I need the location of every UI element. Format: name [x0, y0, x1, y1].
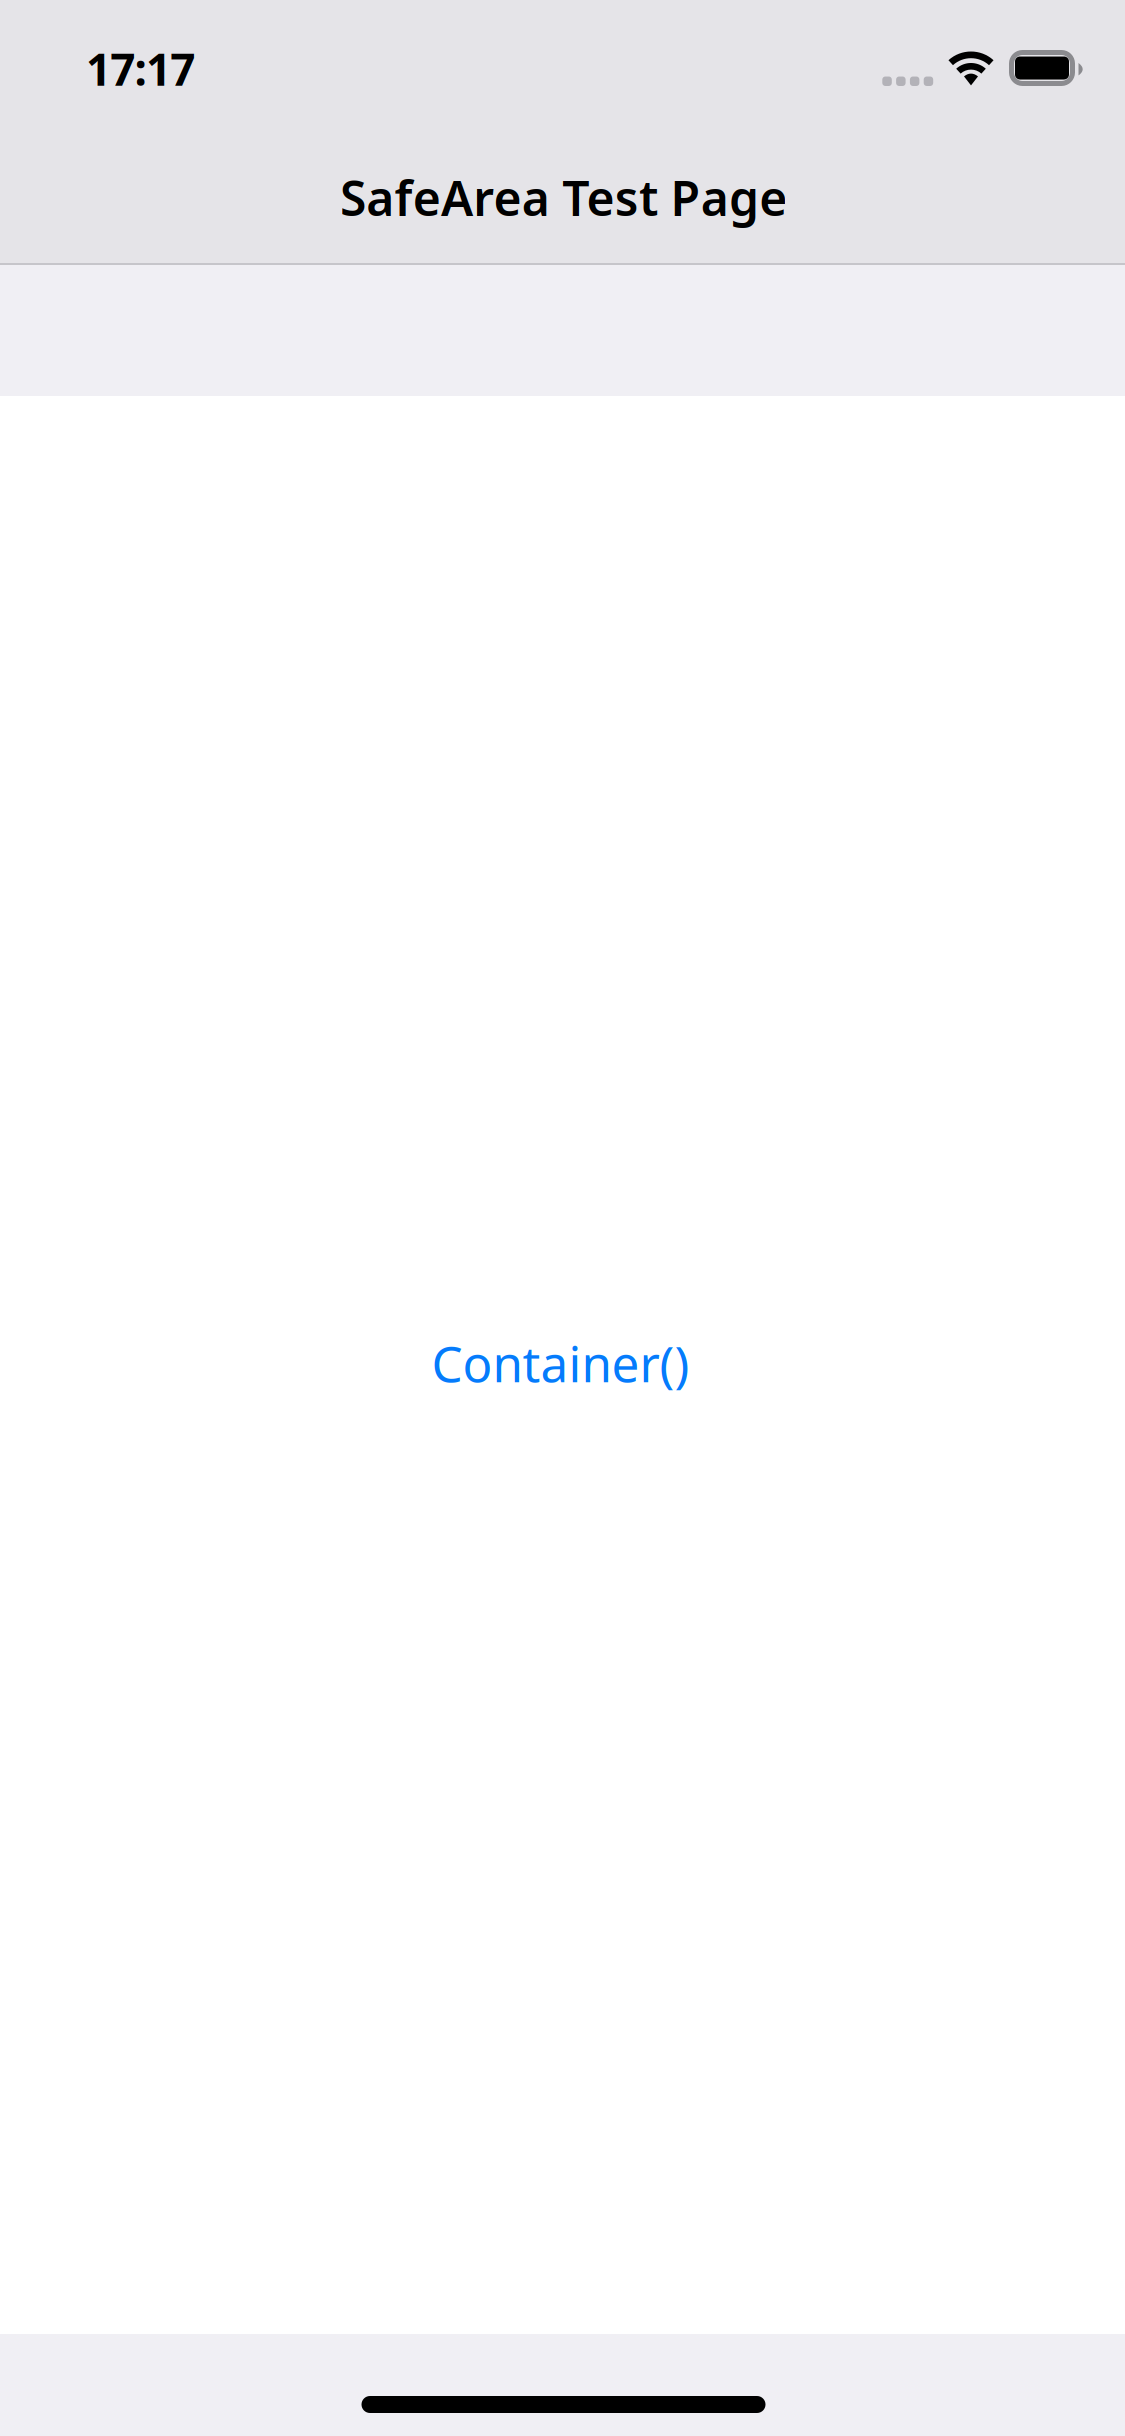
- button[interactable]: Container(): [431, 1330, 689, 1396]
- staticText: Container(): [431, 1330, 689, 1396]
- staticText: SafeArea Test Page: [340, 166, 787, 229]
- staticText: 17:17: [86, 40, 195, 98]
